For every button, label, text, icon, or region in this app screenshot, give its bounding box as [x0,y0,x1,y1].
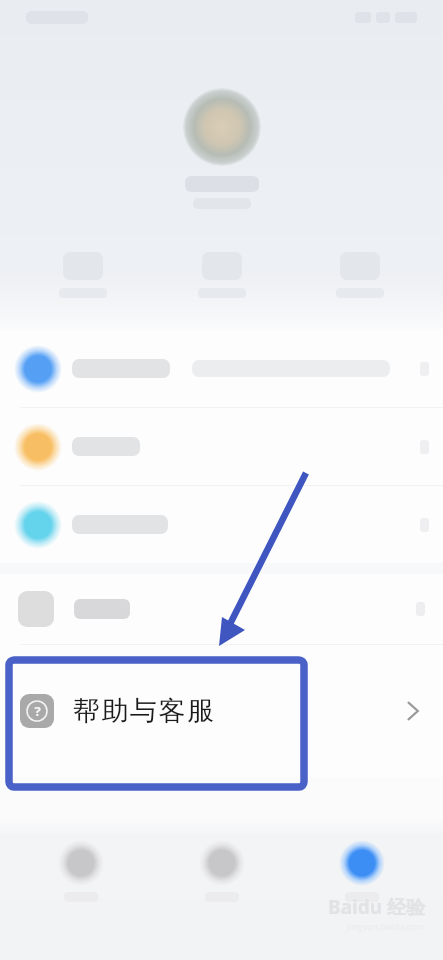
button[interactable] [167,248,277,302]
button[interactable] [28,248,138,302]
button[interactable] [0,330,443,407]
button[interactable]: Profile [302,838,422,904]
button[interactable] [0,408,443,485]
button[interactable]: Tab one [21,838,141,904]
staticText: Baidu 经验 [328,894,425,920]
button[interactable] [305,248,415,302]
other: Open help and customer service [405,698,421,724]
button[interactable] [0,574,443,644]
button[interactable] [183,88,261,209]
button[interactable]: ? [0,645,443,777]
button[interactable]: Tab two [162,838,282,904]
staticText: 帮助与客服 [73,694,216,728]
button[interactable] [0,486,443,563]
staticText: ? [34,702,41,720]
